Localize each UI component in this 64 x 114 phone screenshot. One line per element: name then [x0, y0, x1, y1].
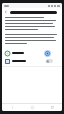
other: Back	[4, 10, 8, 14]
other: Selected	[44, 50, 51, 57]
button[interactable]: Home	[22, 104, 42, 111]
button[interactable]: Wireless emergency alerts	[2, 57, 62, 65]
other: Wireless emergency alerts	[5, 59, 10, 64]
button[interactable]: Recents	[42, 104, 62, 111]
button[interactable]: Back	[2, 104, 22, 111]
button[interactable]: Find My Device	[2, 49, 62, 57]
button[interactable]: Toggle	[46, 59, 53, 63]
button[interactable]: Back	[4, 10, 59, 14]
other: Find My Device	[5, 51, 10, 56]
